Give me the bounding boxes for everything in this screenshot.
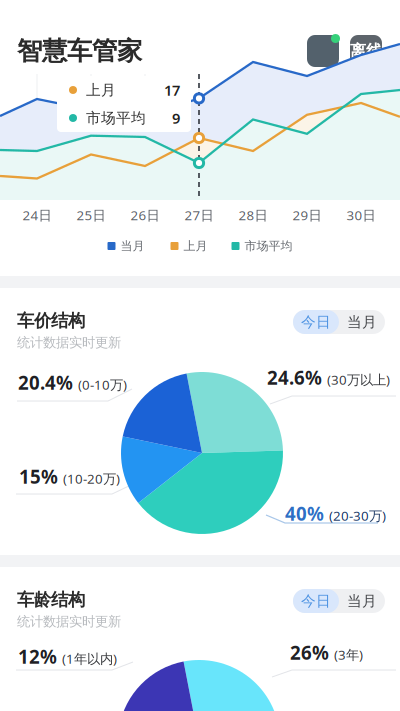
staticText: (20-30万) [329,507,386,524]
staticText: 离线 [350,41,382,61]
staticText: (10-20万) [63,470,120,487]
staticText: 今日 [301,592,331,610]
staticText: 9 [172,108,180,128]
staticText: 28日 [238,206,267,224]
staticText: 统计数据实时更新 [17,613,121,630]
staticText: 统计数据实时更新 [17,334,121,351]
staticText: 市场平均 [86,109,146,127]
staticText: 24日 [22,206,51,224]
button[interactable]: 在线用户 [307,35,339,67]
staticText: 车价结构 [17,310,85,331]
staticText: 智慧车管家 [17,35,142,66]
staticText: 当月 [347,592,377,610]
button[interactable]: 离线用户 [350,35,382,67]
staticText: 24.6% [267,365,322,390]
staticText: 上月 [183,239,207,253]
staticText: 市场平均 [244,239,292,253]
staticText: 上月 [86,81,116,99]
button[interactable]: 当月 [339,310,385,334]
staticText: (30万以上) [327,371,390,388]
staticText: 40% [285,501,324,526]
staticText: 27日 [184,206,213,224]
staticText: (0-10万) [78,376,127,393]
staticText: 25日 [76,206,105,224]
staticText: 今日 [301,313,331,331]
button[interactable]: 今日 [293,310,339,334]
button[interactable]: 当月 [339,589,385,613]
staticText: 12% [18,644,57,669]
staticText: 30日 [346,206,375,224]
staticText: 17 [164,80,180,100]
staticText: 26日 [130,206,159,224]
staticText: 车龄结构 [17,589,85,610]
staticText: (3年) [334,646,363,663]
button[interactable]: 今日 [293,589,339,613]
staticText: 15% [19,464,58,489]
staticText: 当月 [120,239,144,253]
staticText: 当月 [347,313,377,331]
staticText: 29日 [292,206,321,224]
staticText: 26% [290,640,329,665]
staticText: (1年以内) [62,650,117,667]
staticText: 20.4% [18,370,73,395]
